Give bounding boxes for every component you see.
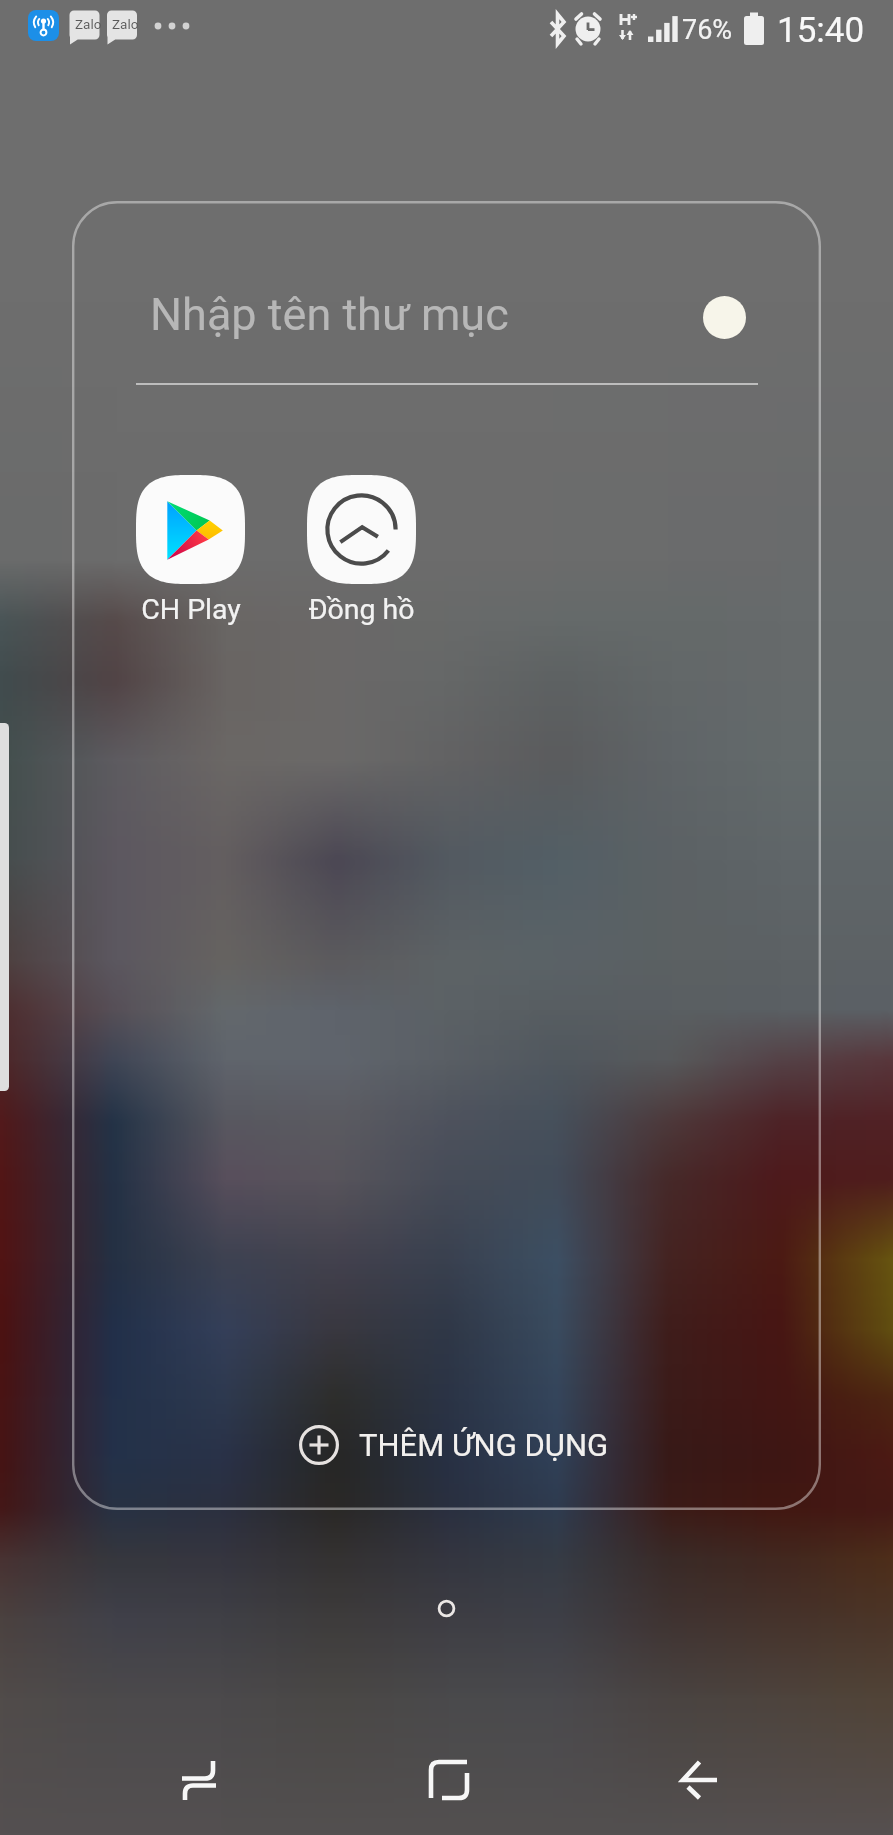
button[interactable]: CH Play <box>105 475 276 626</box>
button[interactable]: Edge panel handle <box>0 723 9 1091</box>
button[interactable]: THÊM ỨNG DỤNG <box>277 1403 633 1487</box>
button[interactable]: Home <box>349 1725 549 1835</box>
button[interactable]: Recent apps <box>99 1725 299 1835</box>
staticText: CH Play <box>141 593 241 626</box>
staticText: Zalo <box>112 16 139 32</box>
button[interactable]: Back <box>600 1725 800 1835</box>
staticText: Zalo <box>75 16 102 32</box>
staticText: Đồng hồ <box>308 593 415 626</box>
staticText: 76% <box>682 14 733 46</box>
button[interactable]: Nhập tên thư mục <box>150 264 758 364</box>
button[interactable]: Page 1 <box>423 1585 470 1632</box>
staticText: THÊM ỨNG DỤNG <box>359 1427 609 1463</box>
button[interactable]: Đồng hồ <box>276 475 447 626</box>
button[interactable]: Folder colour <box>703 296 746 339</box>
staticText: Nhập tên thư mục <box>150 288 509 341</box>
staticText: 15:40 <box>777 10 865 51</box>
